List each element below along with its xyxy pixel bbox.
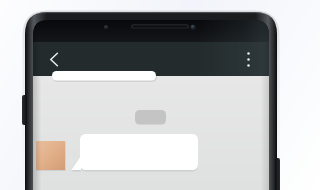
button[interactable]: Previous message xyxy=(52,71,157,81)
button[interactable]: Date separator xyxy=(135,110,166,125)
button[interactable]: Back xyxy=(40,45,68,73)
button[interactable]: Message bubble xyxy=(78,134,199,171)
button[interactable]: Contact avatar xyxy=(36,141,65,170)
button[interactable]: More options xyxy=(236,45,262,73)
